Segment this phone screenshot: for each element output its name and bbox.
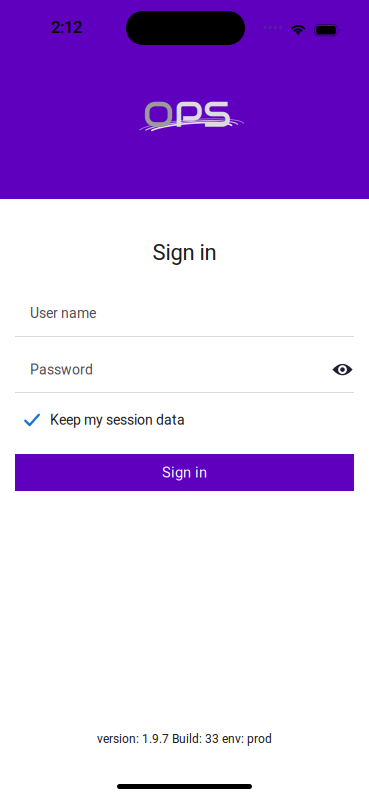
staticText: PS bbox=[174, 91, 231, 137]
button[interactable]: Sign in bbox=[15, 454, 354, 491]
staticText: 2:12 bbox=[51, 17, 82, 37]
staticText: User name bbox=[30, 305, 96, 321]
staticText: Sign in bbox=[162, 464, 207, 481]
staticText: version: 1.9.7 Build: 33 env: prod bbox=[97, 732, 272, 746]
staticText: Password bbox=[30, 361, 93, 378]
button[interactable]: Show password bbox=[326, 357, 359, 382]
button[interactable]: Keep my session data bbox=[0, 407, 369, 433]
staticText: O bbox=[143, 91, 174, 137]
staticText: Sign in bbox=[152, 240, 216, 265]
staticText: Keep my session data bbox=[50, 412, 185, 428]
